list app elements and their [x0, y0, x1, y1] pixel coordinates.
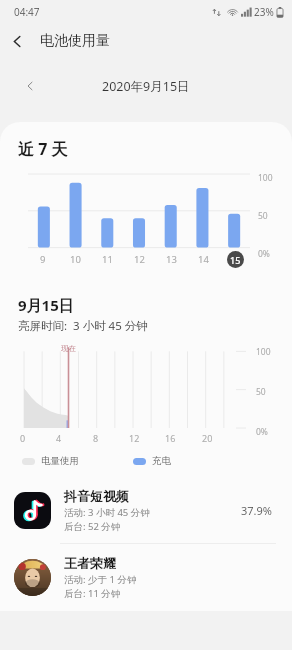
staticText: 12 — [129, 432, 140, 444]
staticText: 电池使用量 — [40, 32, 110, 50]
staticText: 电量使用 — [41, 455, 79, 467]
staticText: 王者荣耀 — [64, 555, 116, 571]
staticText: 100 — [258, 172, 273, 184]
staticText: 活动: 少于 1 分钟 — [64, 573, 137, 586]
staticText: 04:47 — [14, 5, 40, 19]
staticText: 亮屏时间: 3 小时 45 分钟 — [18, 318, 148, 334]
staticText: 50 — [258, 210, 268, 222]
staticText: 10 — [70, 253, 81, 266]
staticText: 0% — [258, 248, 270, 260]
staticText: 9 — [40, 253, 46, 266]
staticText: 现在 — [61, 344, 76, 353]
staticText: 4 — [56, 432, 62, 444]
button[interactable]: 返回 — [0, 24, 34, 58]
button[interactable]: 9 — [0, 172, 292, 277]
button[interactable]: 前一天 — [16, 72, 44, 100]
staticText: 14 — [198, 253, 209, 266]
staticText: 近 7 天 — [18, 138, 68, 160]
staticText: 9月15日 — [18, 295, 74, 315]
staticText: 50 — [256, 386, 266, 398]
button[interactable]: 王者荣耀 — [0, 544, 292, 611]
staticText: 16 — [165, 432, 176, 444]
staticText: 活动: 3 小时 45 分钟 — [64, 506, 150, 519]
staticText: 37.9% — [241, 503, 272, 518]
staticText: 11 — [102, 253, 113, 266]
staticText: 2020年9月15日 — [102, 78, 190, 95]
staticText: 15 — [230, 254, 241, 266]
staticText: 0% — [256, 426, 268, 438]
staticText: 12 — [134, 253, 145, 266]
staticText: 13 — [166, 253, 177, 266]
staticText: 100 — [256, 346, 271, 358]
staticText: 0 — [20, 432, 26, 444]
staticText: 8 — [93, 432, 99, 444]
staticText: 后台: 11 分钟 — [64, 587, 121, 600]
staticText: 抖音短视频 — [64, 488, 129, 504]
staticText: 23% — [254, 5, 274, 19]
staticText: 20 — [202, 432, 213, 444]
staticText: 充电 — [152, 455, 171, 467]
button[interactable]: 抖音短视频 — [0, 477, 292, 544]
staticText: 后台: 52 分钟 — [64, 520, 121, 533]
